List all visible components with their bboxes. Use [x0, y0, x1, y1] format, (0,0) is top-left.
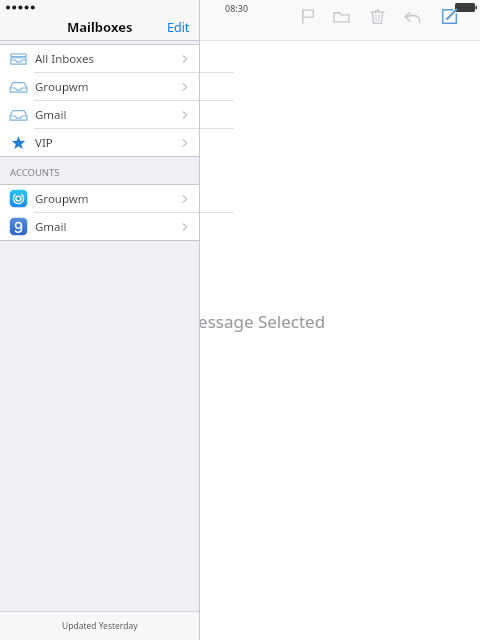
button[interactable]: Edit — [157, 15, 200, 40]
button[interactable]: VIP — [0, 129, 200, 156]
button[interactable]: Compose — [436, 5, 462, 27]
staticText: Groupwm — [35, 79, 89, 95]
button[interactable]: Flag — [294, 5, 320, 27]
button[interactable]: Reply — [399, 5, 425, 27]
button[interactable]: Gmail — [0, 213, 200, 240]
staticText: Groupwm — [35, 191, 89, 207]
button[interactable]: Groupwm — [0, 185, 200, 212]
staticText: Gmail — [35, 219, 67, 235]
staticText: ACCOUNTS — [10, 166, 60, 179]
button[interactable]: Gmail — [0, 101, 200, 128]
staticText: 08:30 — [225, 2, 249, 14]
button[interactable]: Groupwm — [0, 73, 200, 100]
staticText: Edit — [167, 19, 190, 36]
staticText: Mailboxes — [67, 18, 133, 36]
button[interactable]: Delete — [364, 5, 390, 27]
button[interactable]: Move to folder — [328, 5, 354, 27]
staticText: No Message Selected — [155, 310, 326, 333]
staticText: All Inboxes — [35, 51, 94, 67]
staticText: Updated Yesterday — [62, 620, 138, 632]
button[interactable]: All Inboxes — [0, 45, 200, 72]
staticText: VIP — [35, 135, 53, 151]
staticText: Gmail — [35, 107, 67, 123]
